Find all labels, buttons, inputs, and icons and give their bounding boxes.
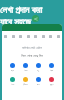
staticText: ব্রাশ <box>37 83 40 85</box>
button[interactable]: Tool <box>49 35 52 38</box>
button[interactable]: শেপ <box>10 77 15 85</box>
staticText: স্টিকার <box>23 83 28 85</box>
staticText: লেখা <box>24 69 28 71</box>
button[interactable]: স্টিকার <box>23 77 28 85</box>
button[interactable]: মুছুন <box>49 77 54 85</box>
staticText: মুছুন <box>50 83 54 85</box>
button[interactable]: Tool <box>4 35 7 38</box>
button[interactable]: ছবি <box>10 63 15 71</box>
button[interactable]: Tool <box>42 35 45 38</box>
button[interactable]: রঙ <box>36 63 41 71</box>
staticText: ছবি <box>11 69 14 71</box>
button[interactable]: Share <box>32 15 39 22</box>
button[interactable]: Tool <box>57 35 60 38</box>
staticText: রঙ <box>37 69 40 71</box>
staticText: লেখা প্রদান করা <box>0 3 43 15</box>
button[interactable]: ব্রাশ <box>36 77 41 85</box>
button[interactable]: ফ্রেম <box>49 63 54 71</box>
staticText: ফ্রেম <box>50 69 54 71</box>
button[interactable]: Tool <box>12 35 15 38</box>
staticText: আপনার লেখা এখানে <box>2 46 62 50</box>
staticText: শেপ <box>11 83 15 85</box>
staticText: নিচে থেকে বেছে নিন <box>2 53 62 58</box>
staticText: যাবে সহজে <box>0 15 31 27</box>
button[interactable]: লেখা <box>23 63 28 71</box>
button[interactable]: Tool <box>27 35 30 38</box>
button[interactable]: Tool <box>19 35 22 38</box>
button[interactable]: Tool <box>34 35 37 38</box>
